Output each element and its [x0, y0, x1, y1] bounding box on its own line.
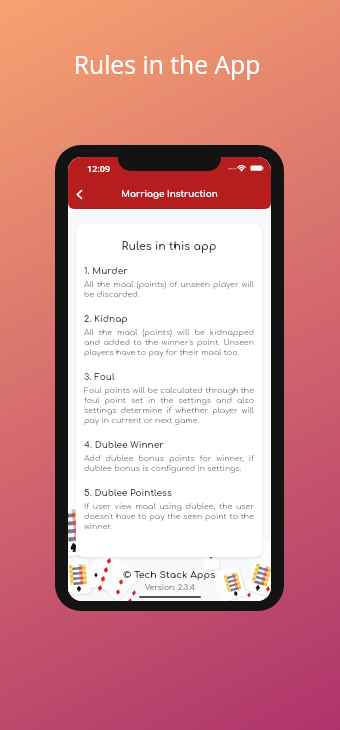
staticText: Marriage Instruction	[121, 189, 218, 199]
staticText: © Tech Stack Apps	[123, 570, 216, 581]
staticText: Version: 2.3.4	[145, 583, 195, 591]
staticText: Add dublee bonus points for winner, if d…	[84, 454, 254, 473]
staticText: 2. Kidnap	[84, 314, 128, 324]
staticText: Rules in the App	[0, 48, 337, 82]
staticText: 12:09	[87, 162, 111, 174]
staticText: Rules in this app	[84, 240, 254, 252]
button[interactable]: Back	[69, 184, 89, 204]
staticText: 1. Murder	[84, 266, 128, 276]
staticText: All the maal (points) will be kidnapped …	[84, 328, 254, 357]
staticText: 4. Dublee Winner	[84, 440, 164, 450]
staticText: If user view maal using dublee, the user…	[84, 502, 254, 531]
staticText: 5. Dublee Pointless	[84, 488, 172, 498]
staticText: 3. Foul	[84, 372, 115, 382]
staticText: All the maal (points) of unseen player w…	[84, 280, 254, 299]
staticText: Foul points will be calculated through t…	[84, 386, 254, 425]
